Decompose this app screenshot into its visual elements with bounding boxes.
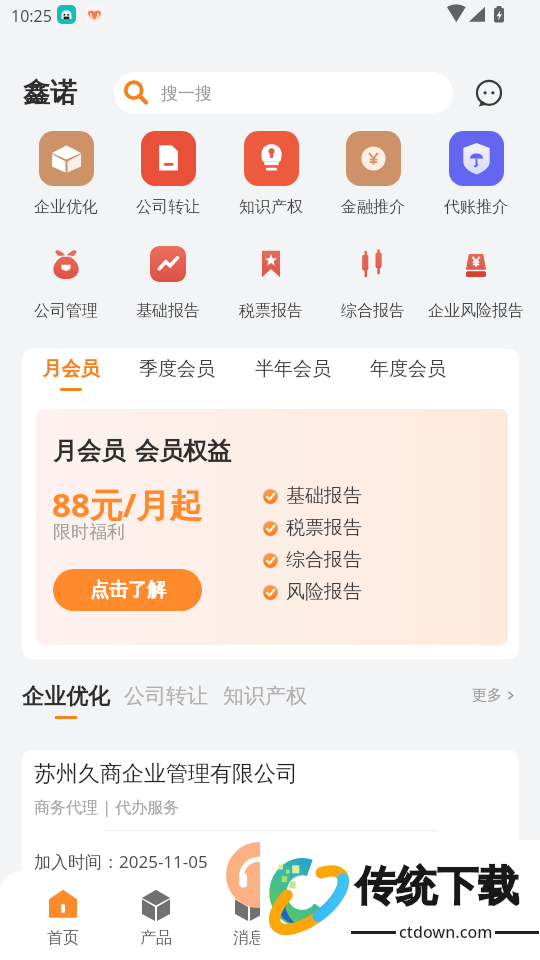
button[interactable]: 消息 [203,889,295,948]
button[interactable]: 知识产权 [223,683,307,709]
button[interactable]: 公司转让 [116,131,220,217]
button[interactable]: 搜一搜 [114,72,453,114]
button[interactable]: 点击了解 [53,569,202,611]
button[interactable]: 更多 [472,686,515,705]
staticText: 苏州久商企业管理有限公司 [34,760,298,788]
button[interactable]: 苏州久商企业管理有限公司 [22,750,519,890]
staticText: 首页 [47,928,79,948]
staticText: 限时福利 [53,521,125,544]
button[interactable]: Customer service [226,842,292,908]
button[interactable]: 季度会员 [122,357,232,388]
button[interactable]: 产品 [110,889,202,948]
staticText: 鑫诺 [23,76,77,110]
button[interactable]: 月会员 [22,357,126,391]
button[interactable]: 我的 [296,889,388,948]
button[interactable]: Messages [474,79,504,109]
staticText: 88元/月起 [52,482,203,527]
button[interactable]: 首页 [17,889,109,948]
button[interactable]: 知识产权 [219,131,323,217]
staticText: 我的 [326,928,358,948]
staticText: 基础报告 [112,301,224,321]
button[interactable]: 企业优化 [22,683,110,719]
staticText: 知识产权 [219,197,323,217]
button[interactable]: 税票报告 [215,246,327,321]
button[interactable]: 金融推介 [321,131,425,217]
staticText: 月会员 [53,436,125,466]
staticText: 风险报告 [286,580,362,604]
staticText: 半年会员 [238,357,348,381]
button[interactable]: 企业风险报告 [420,246,532,321]
staticText: 点击了解 [90,578,166,602]
button[interactable]: 代账推介 [424,131,528,217]
staticText: 税票报告 [286,516,362,540]
staticText: 搜一搜 [161,83,212,104]
staticText: 综合报告 [286,548,362,572]
staticText: 10:25 [11,5,52,27]
staticText: 综合报告 [317,301,429,321]
staticText: 更多 [472,686,502,705]
staticText: ctdown.com [399,921,493,943]
staticText: 产品 [140,928,172,948]
staticText: 消息 [233,928,265,948]
button[interactable]: 年度会员 [353,357,463,388]
staticText: 季度会员 [122,357,232,381]
staticText: 企业风险报告 [420,301,532,321]
staticText: 商务代理 | 代办服务 [34,796,180,818]
staticText: 传统下载 [355,861,519,913]
staticText: 公司管理 [10,301,122,321]
staticText: 年度会员 [353,357,463,381]
staticText: 税票报告 [215,301,327,321]
staticText: 企业优化 [14,197,118,217]
staticText: 公司转让 [116,197,220,217]
staticText: 企业优化 [22,683,110,711]
button[interactable]: 公司转让 [124,683,208,709]
button[interactable]: 基础报告 [112,246,224,321]
staticText: 代账推介 [424,197,528,217]
staticText: 月会员 [22,357,126,381]
button[interactable]: 半年会员 [238,357,348,388]
staticText: 加入时间：2025-11-05 [34,850,208,873]
staticText: 基础报告 [286,484,362,508]
staticText: 会员权益 [135,436,231,466]
button[interactable]: 综合报告 [317,246,429,321]
button[interactable]: 企业优化 [14,131,118,217]
staticText: 金融推介 [321,197,425,217]
button[interactable]: 公司管理 [10,246,122,321]
